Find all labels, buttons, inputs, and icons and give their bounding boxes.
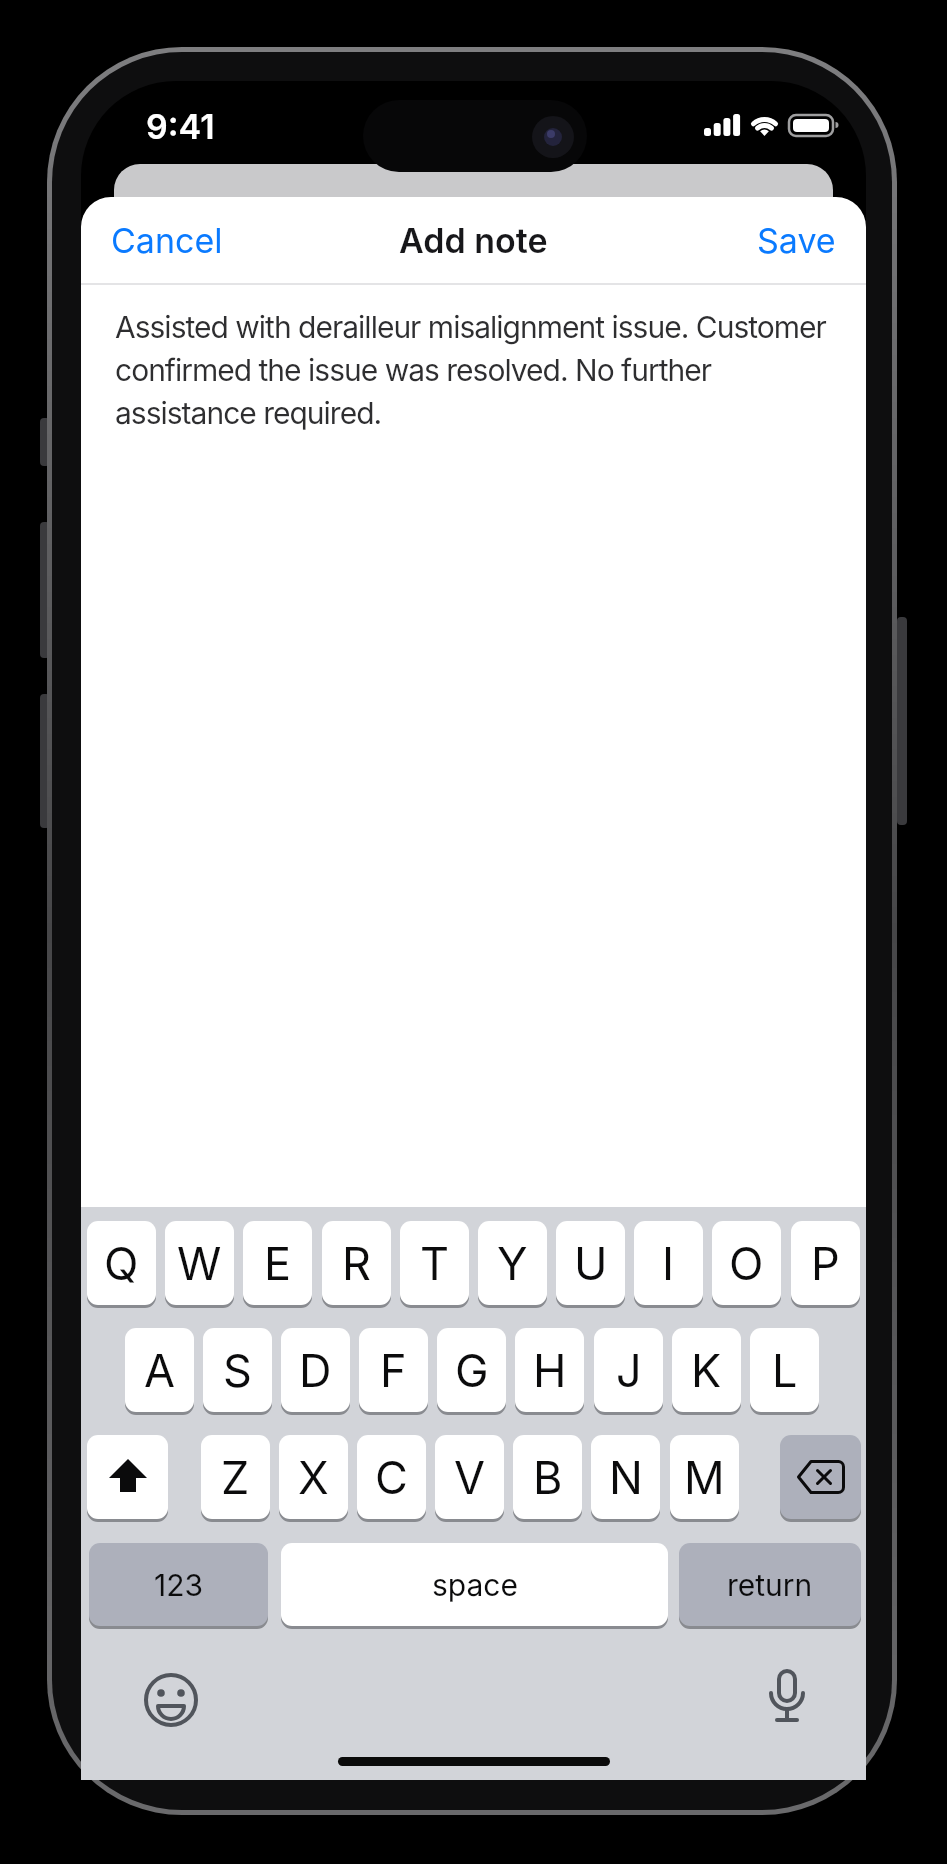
button[interactable]: S <box>203 1328 272 1412</box>
button[interactable]: M <box>670 1435 739 1519</box>
button[interactable]: B <box>513 1435 582 1519</box>
button[interactable] <box>87 1435 168 1519</box>
staticText: K <box>691 1343 722 1397</box>
staticText: U <box>574 1236 608 1290</box>
button[interactable]: P <box>791 1221 860 1305</box>
button[interactable]: Q <box>87 1221 156 1305</box>
staticText: P <box>811 1236 840 1290</box>
staticText: Cancel <box>111 220 223 261</box>
staticText: G <box>455 1343 489 1397</box>
staticText: L <box>772 1343 798 1397</box>
staticText: C <box>375 1450 408 1504</box>
button[interactable]: return <box>679 1543 861 1626</box>
staticText: Q <box>104 1236 139 1290</box>
staticText: H <box>533 1343 567 1397</box>
button[interactable]: J <box>594 1328 663 1412</box>
button[interactable]: F <box>359 1328 428 1412</box>
button[interactable]: T <box>400 1221 469 1305</box>
staticText: V <box>454 1450 486 1504</box>
button[interactable]: U <box>556 1221 625 1305</box>
button[interactable]: C <box>357 1435 426 1519</box>
button[interactable]: E <box>243 1221 312 1305</box>
button[interactable]: L <box>750 1328 819 1412</box>
button[interactable] <box>141 1670 201 1730</box>
staticText: 9:41 <box>146 106 215 147</box>
staticText: I <box>662 1236 675 1290</box>
button[interactable] <box>780 1435 861 1519</box>
button[interactable]: G <box>437 1328 506 1412</box>
staticText: Z <box>221 1450 250 1504</box>
staticText: return <box>727 1567 813 1603</box>
staticText: S <box>223 1343 252 1397</box>
staticText: T <box>420 1236 450 1290</box>
button[interactable]: O <box>712 1221 781 1305</box>
staticText: M <box>684 1450 725 1504</box>
staticText: 123 <box>154 1567 204 1603</box>
button[interactable]: 123 <box>89 1543 268 1626</box>
button[interactable]: X <box>279 1435 348 1519</box>
button[interactable]: A <box>125 1328 194 1412</box>
staticText: W <box>177 1236 222 1290</box>
staticText: X <box>298 1450 329 1504</box>
button[interactable] <box>759 1667 815 1733</box>
staticText: Add note <box>399 220 548 261</box>
staticText: R <box>342 1236 371 1290</box>
button[interactable]: N <box>591 1435 660 1519</box>
button[interactable]: K <box>672 1328 741 1412</box>
button[interactable]: H <box>515 1328 584 1412</box>
staticText: N <box>609 1450 643 1504</box>
button[interactable]: W <box>165 1221 234 1305</box>
staticText: F <box>380 1343 407 1397</box>
button[interactable]: Z <box>201 1435 270 1519</box>
staticText: Assisted with derailleur misalignment is… <box>115 309 826 432</box>
staticText: space <box>432 1567 518 1603</box>
button[interactable]: Cancel <box>95 207 245 273</box>
button[interactable]: R <box>322 1221 391 1305</box>
staticText: A <box>144 1343 176 1397</box>
staticText: D <box>299 1343 332 1397</box>
staticText: Y <box>497 1236 528 1290</box>
staticText: J <box>616 1343 642 1397</box>
staticText: E <box>264 1236 292 1290</box>
staticText: Save <box>757 220 836 261</box>
staticText: O <box>729 1236 764 1290</box>
button[interactable]: Y <box>478 1221 547 1305</box>
button[interactable]: I <box>634 1221 703 1305</box>
button[interactable]: V <box>435 1435 504 1519</box>
button[interactable]: space <box>281 1543 668 1626</box>
button[interactable]: Save <box>702 207 852 273</box>
staticText: B <box>533 1450 563 1504</box>
button[interactable]: D <box>281 1328 350 1412</box>
